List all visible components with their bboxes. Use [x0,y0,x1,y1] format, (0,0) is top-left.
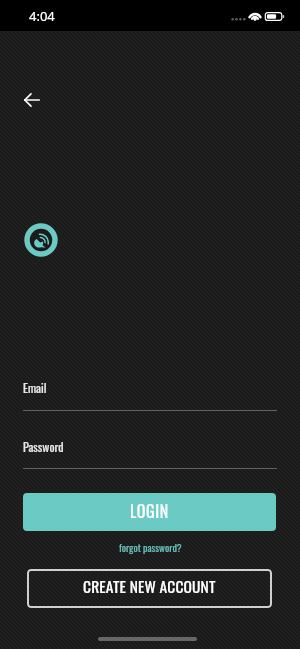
button[interactable]: CREATE NEW ACCOUNT [27,569,272,608]
button[interactable]: Password [23,436,277,458]
button[interactable]: Back [15,83,48,116]
staticText: 4:04 [29,7,55,25]
staticText: forgot password? [119,540,182,555]
staticText: Password [23,438,64,456]
staticText: Email [23,379,47,397]
staticText: LOGIN [130,499,169,523]
staticText: CREATE NEW ACCOUNT [83,575,216,598]
button[interactable]: Email [23,377,277,399]
button[interactable]: LOGIN [23,493,276,531]
button[interactable]: forgot password? [108,538,192,556]
